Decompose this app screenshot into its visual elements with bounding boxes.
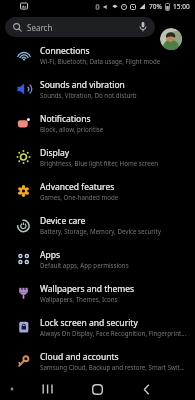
button[interactable]: [160, 28, 182, 50]
button[interactable]: [28, 378, 68, 400]
staticText: Default apps, App permissions: [40, 261, 129, 269]
button[interactable]: Display: [0, 140, 195, 174]
button[interactable]: Apps: [0, 242, 195, 276]
staticText: Search: [27, 22, 53, 33]
staticText: Connections: [40, 45, 90, 57]
button[interactable]: Advanced features: [0, 174, 195, 208]
staticText: Wi-Fi, Bluetooth, Data usage, Flight mod…: [40, 57, 161, 65]
staticText: Wallpapers and themes: [40, 283, 135, 295]
staticText: 15:00: [173, 2, 190, 11]
staticText: Apps: [40, 249, 60, 261]
staticText: Samsung Cloud, Backup and restore, Smart…: [40, 363, 185, 371]
staticText: Lock screen and security: [40, 317, 138, 329]
button[interactable]: Device care: [0, 208, 195, 242]
staticText: 70%: [149, 2, 162, 11]
staticText: Device care: [40, 215, 86, 227]
button[interactable]: Notifications: [0, 106, 195, 140]
button[interactable]: Search: [5, 17, 155, 37]
staticText: Block, allow, prioritise: [40, 125, 104, 133]
staticText: Advanced features: [40, 181, 115, 193]
button[interactable]: [77, 378, 117, 400]
staticText: Sounds, Vibration, Do not disturb: [40, 91, 137, 99]
button[interactable]: [126, 378, 166, 400]
staticText: Notifications: [40, 113, 91, 125]
button[interactable]: Cloud and accounts: [0, 344, 195, 378]
staticText: Brightness, Blue light filter, Home scre…: [40, 159, 159, 167]
button[interactable]: Connections: [0, 38, 195, 72]
staticText: Display: [40, 147, 69, 159]
staticText: Sounds and vibration: [40, 79, 125, 91]
button[interactable]: Wallpapers and themes: [0, 276, 195, 310]
staticText: Always On Display, Face Recognition, Fin…: [40, 329, 187, 337]
button[interactable]: Lock screen and security: [0, 310, 195, 344]
staticText: Wallpapers, Themes, Icons: [40, 295, 118, 303]
staticText: Games, One-handed mode: [40, 193, 119, 201]
staticText: Battery, Storage, Memory, Device securit…: [40, 227, 161, 235]
staticText: Cloud and accounts: [40, 351, 119, 363]
button[interactable]: Sounds and vibration: [0, 72, 195, 106]
